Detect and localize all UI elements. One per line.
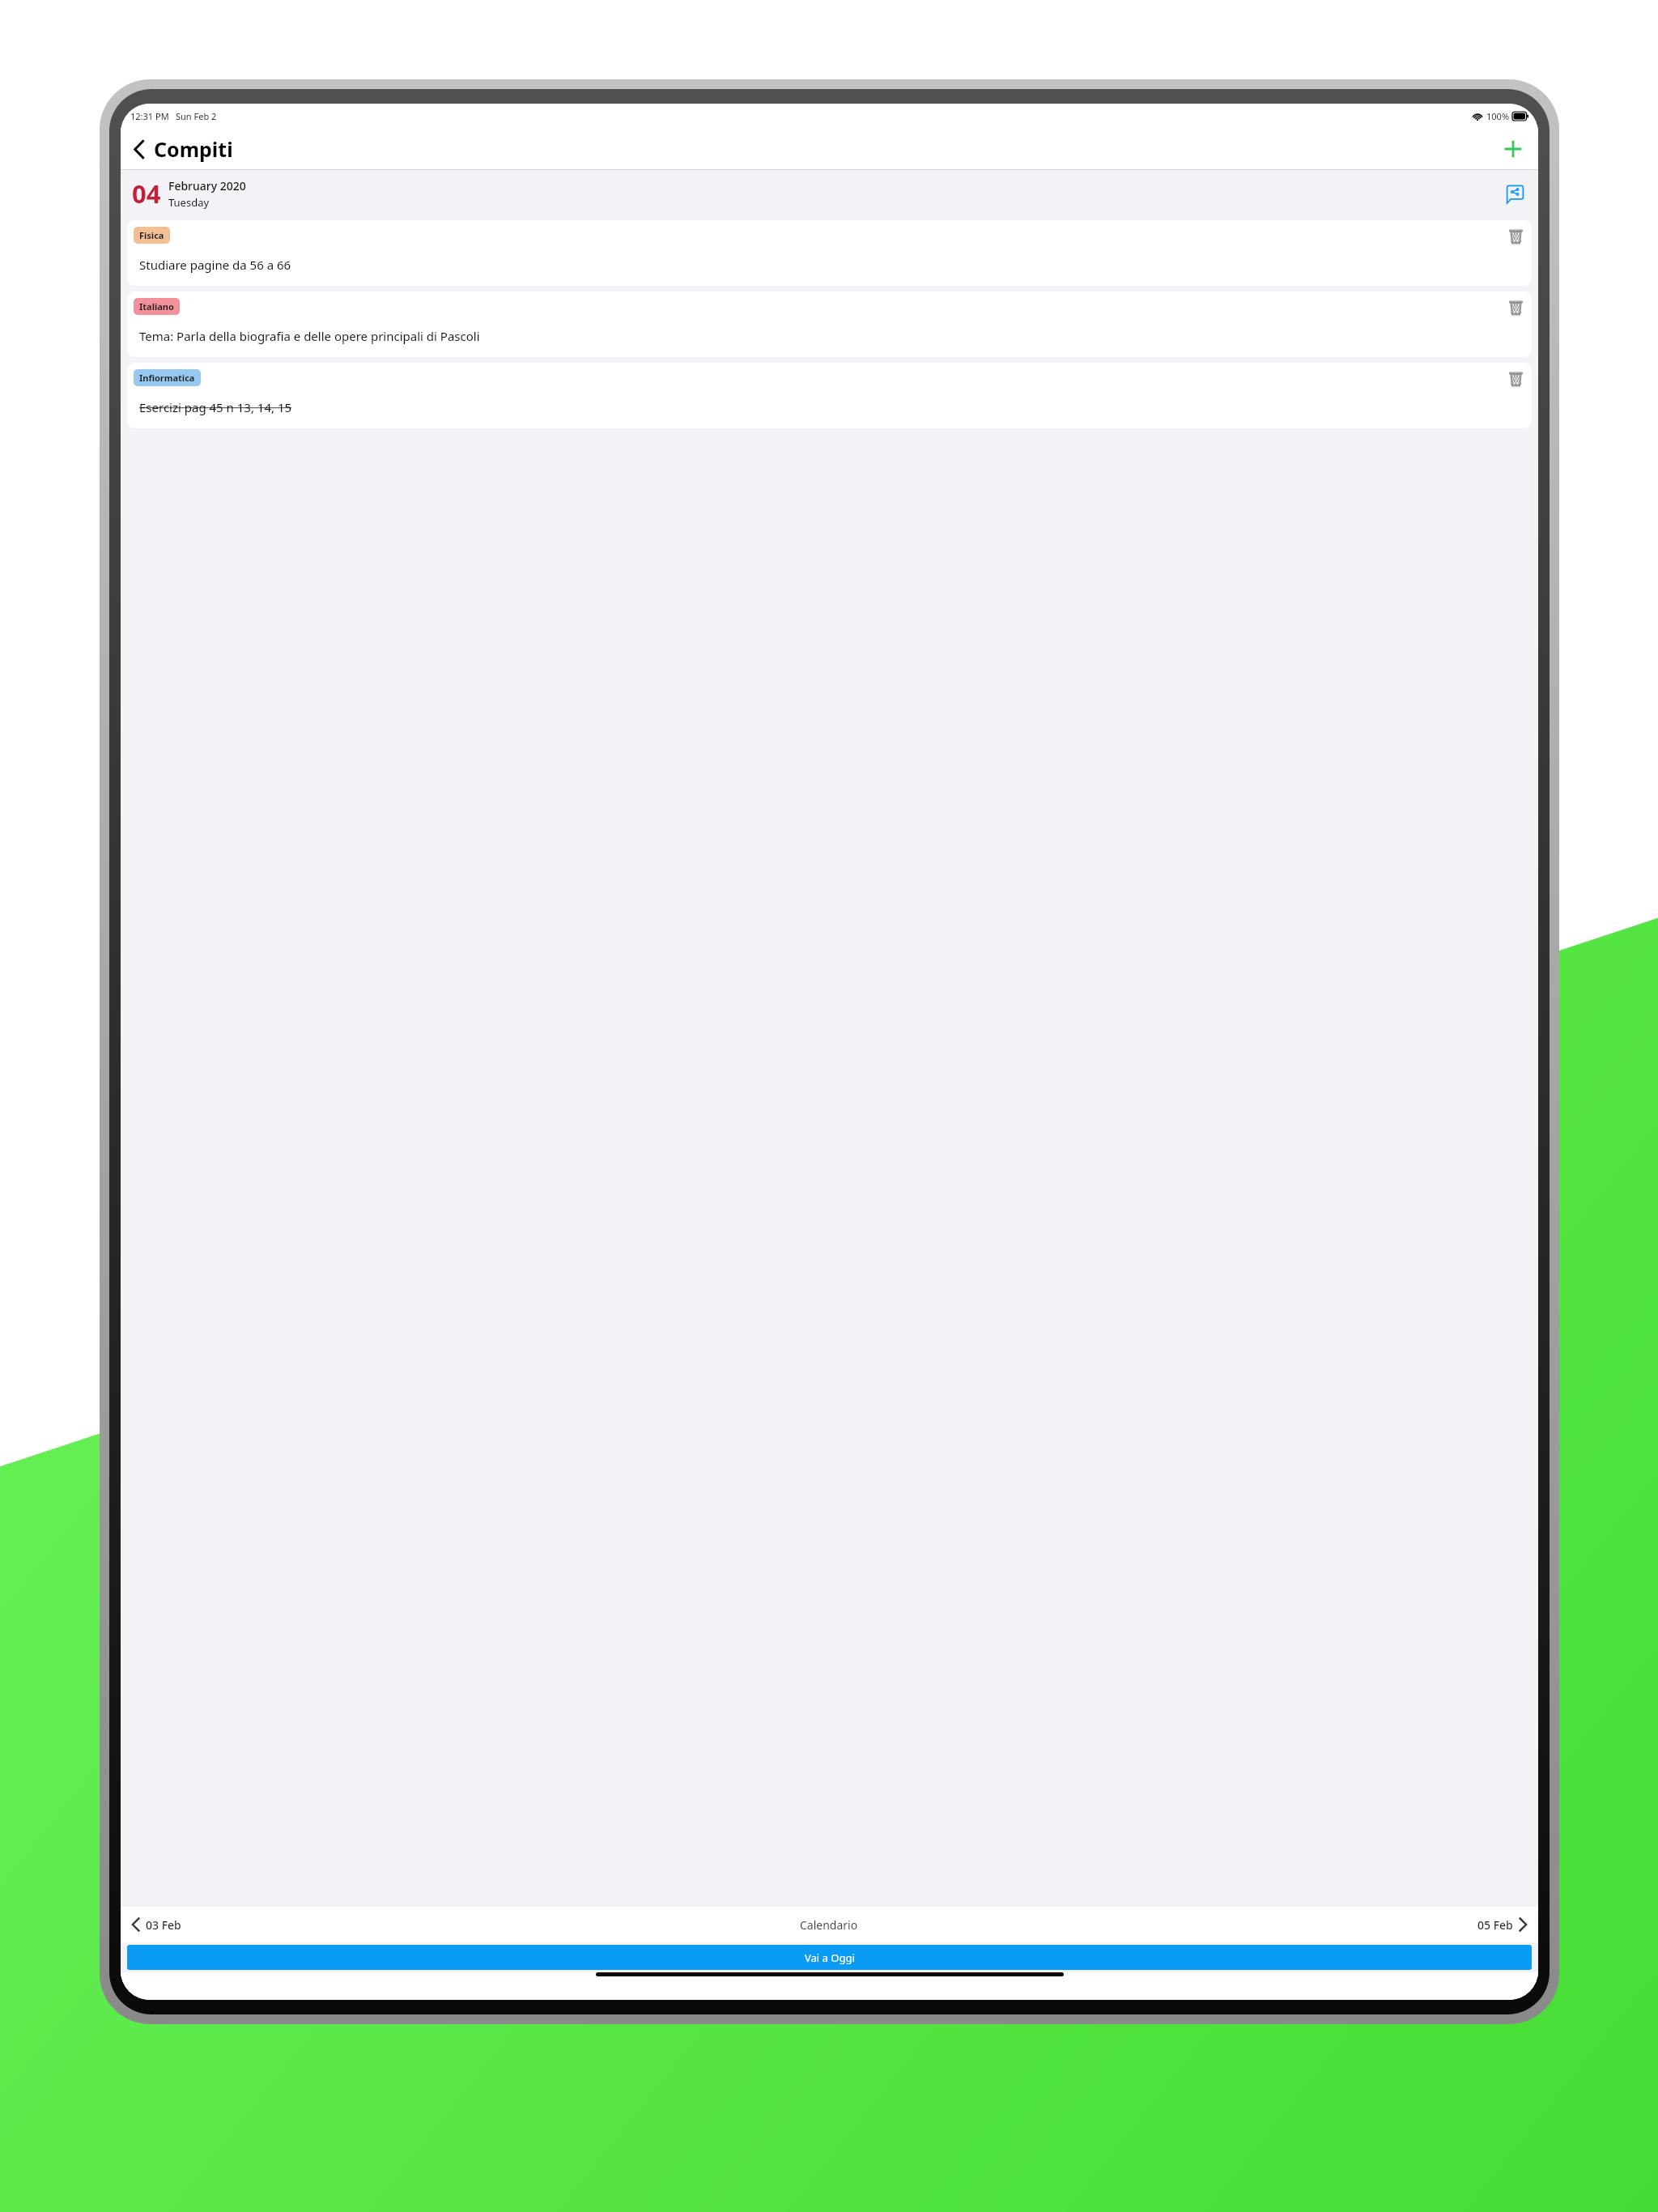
staticText: Calendario: [800, 1917, 858, 1933]
staticText: February 2020: [168, 178, 246, 194]
button[interactable]: 05 Feb: [1477, 1916, 1528, 1933]
staticText: Infiormatica: [139, 372, 195, 384]
staticText: Sun Feb 2: [176, 110, 217, 122]
button[interactable]: Delete: [1506, 369, 1525, 389]
button[interactable]: Vai a Oggi: [127, 1945, 1532, 1970]
button[interactable]: Italiano: [134, 298, 180, 315]
staticText: 100%: [1486, 110, 1510, 122]
button[interactable]: Calendario: [800, 1917, 858, 1933]
staticText: Esercizi pag 45 n 13, 14, 15: [139, 399, 292, 415]
button[interactable]: Delete: [1506, 227, 1525, 246]
staticText: 03 Feb: [146, 1917, 181, 1933]
staticText: Italiano: [139, 300, 174, 313]
staticText: Compiti: [154, 135, 233, 163]
button[interactable]: Back: [132, 135, 236, 163]
button[interactable]: Infiormatica: [134, 369, 201, 386]
staticText: Studiare pagine da 56 a 66: [139, 257, 291, 273]
button[interactable]: 03 Feb: [130, 1916, 181, 1933]
staticText: Fisica: [139, 229, 164, 241]
staticText: 04: [132, 177, 161, 211]
staticText: Tema: Parla della biografia e delle oper…: [139, 328, 480, 344]
staticText: Vai a Oggi: [805, 1950, 855, 1965]
staticText: 05 Feb: [1477, 1917, 1513, 1933]
button[interactable]: Italiano: [127, 291, 1532, 357]
button[interactable]: Add: [1499, 135, 1527, 163]
other: Back: [132, 138, 146, 160]
button[interactable]: Delete: [1506, 298, 1525, 317]
button[interactable]: Fisica: [134, 227, 170, 244]
staticText: 12:31 PM: [130, 110, 169, 122]
button[interactable]: Fisica: [127, 220, 1532, 286]
button[interactable]: Infiormatica: [127, 363, 1532, 428]
button[interactable]: Share: [1503, 181, 1527, 206]
staticText: Tuesday: [168, 195, 210, 210]
